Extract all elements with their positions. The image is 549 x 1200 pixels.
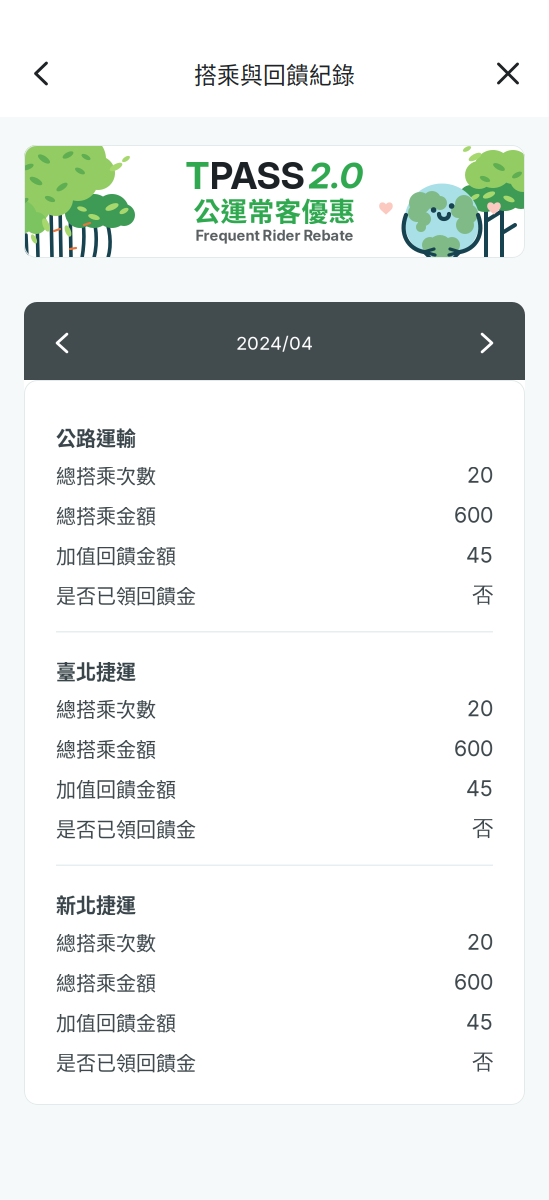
staticText: 2024/04 — [236, 332, 313, 354]
staticText: 是否已領回饋金 — [56, 1047, 196, 1076]
staticText: 新北捷運 — [56, 890, 136, 919]
staticText: 加值回饋金額 — [56, 1007, 176, 1036]
staticText: 總搭乘次數 — [56, 694, 156, 723]
button[interactable]: 返回 — [10, 38, 72, 108]
staticText: 總搭乘次數 — [56, 927, 156, 956]
staticText: 是否已領回饋金 — [56, 580, 196, 609]
staticText: 是否已領回饋金 — [56, 814, 196, 843]
staticText: 臺北捷運 — [56, 656, 136, 685]
staticText: 45 — [466, 776, 493, 801]
staticText: 20 — [467, 929, 493, 955]
staticText: 20 — [467, 462, 493, 488]
staticText: PASS — [209, 153, 304, 198]
staticText: 公路運輸 — [56, 423, 136, 452]
button[interactable]: 上一個月 — [32, 315, 92, 371]
staticText: 總搭乘次數 — [56, 460, 156, 489]
staticText: 20 — [467, 696, 493, 721]
staticText: 總搭乘金額 — [56, 734, 156, 763]
staticText: 搭乘與回饋紀錄 — [194, 57, 355, 90]
staticText: 否 — [472, 1049, 493, 1075]
staticText: 45 — [466, 542, 493, 568]
staticText: 45 — [466, 1009, 493, 1035]
staticText: 公運常客優惠 — [193, 190, 355, 229]
staticText: 總搭乘金額 — [56, 967, 156, 996]
staticText: T — [185, 153, 209, 198]
staticText: 加值回饋金額 — [56, 540, 176, 569]
button[interactable]: 關閉 — [477, 38, 539, 108]
staticText: 2.0 — [308, 154, 363, 197]
staticText: 總搭乘金額 — [56, 500, 156, 529]
staticText: 否 — [472, 582, 493, 608]
staticText: 否 — [472, 815, 493, 842]
staticText: 600 — [454, 969, 493, 995]
button[interactable]: 下一個月 — [457, 315, 517, 371]
staticText: 600 — [454, 502, 493, 528]
staticText: 加值回饋金額 — [56, 774, 176, 803]
staticText: 600 — [454, 736, 493, 761]
staticText: Frequent Rider Rebate — [195, 227, 353, 244]
